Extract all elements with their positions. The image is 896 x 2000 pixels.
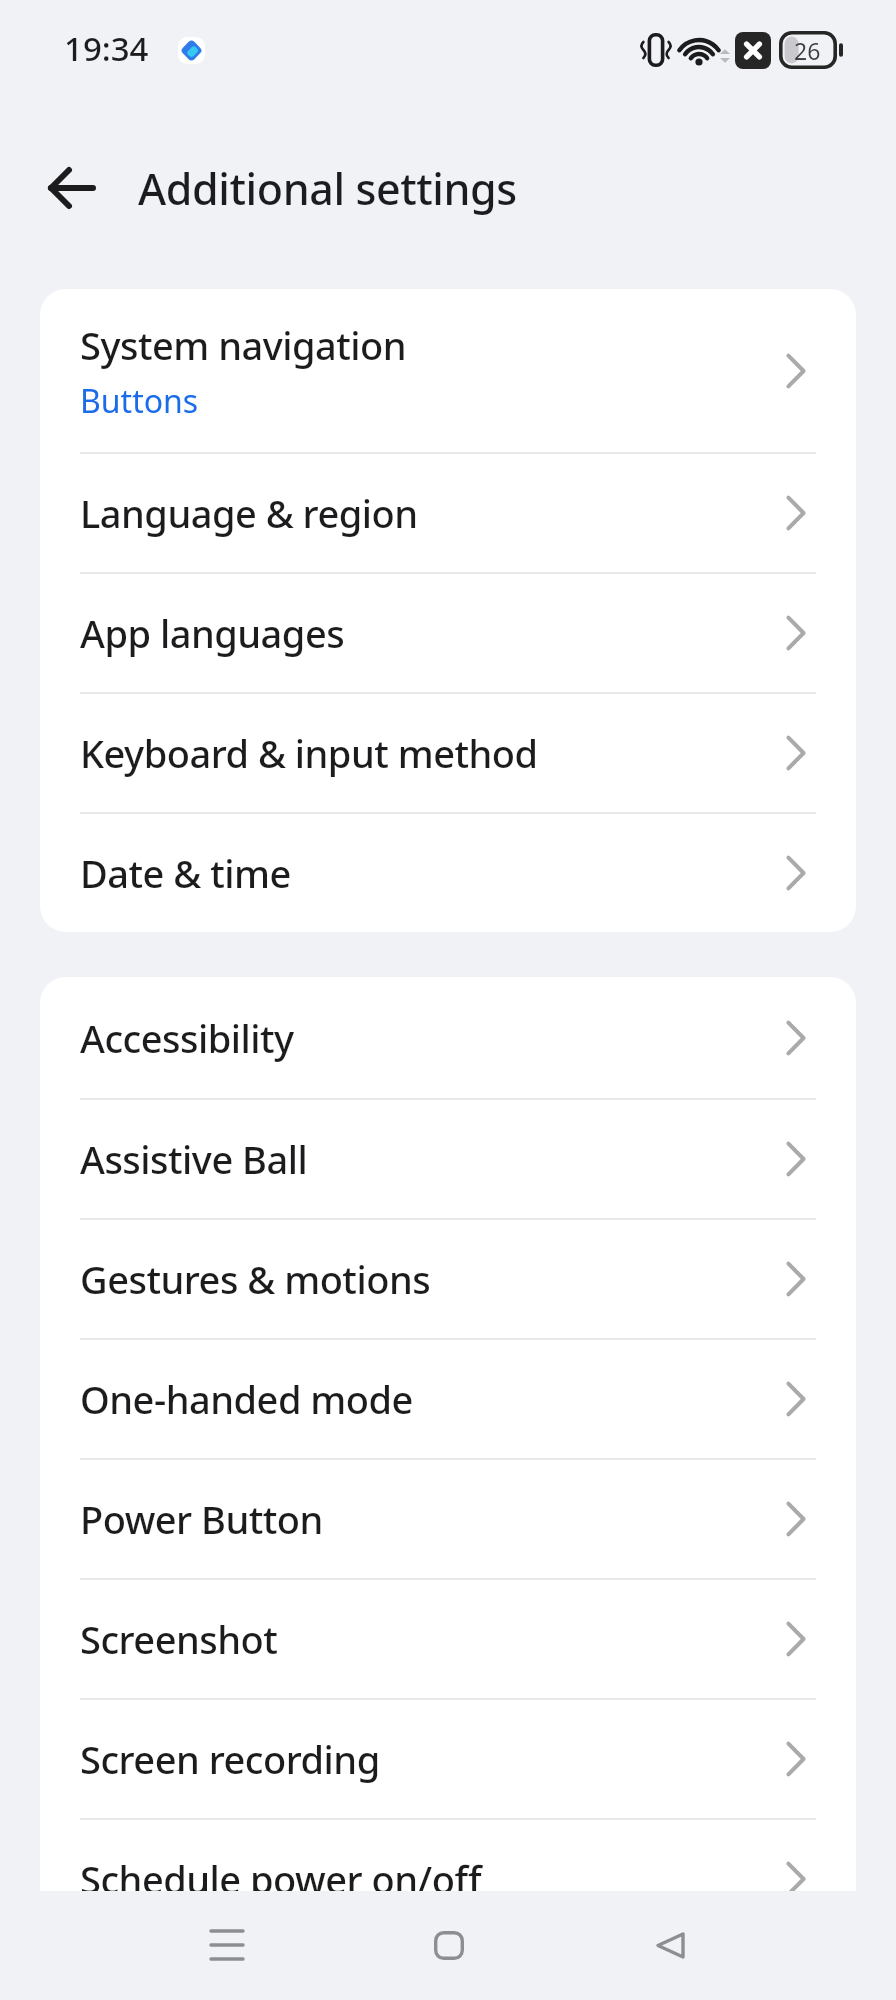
staticText: Screenshot <box>80 1613 278 1665</box>
button[interactable]: Keyboard & input method <box>40 694 856 812</box>
staticText: One-handed mode <box>80 1373 413 1425</box>
staticText: Keyboard & input method <box>80 727 538 779</box>
button[interactable]: One-handed mode <box>40 1340 856 1458</box>
staticText: Screen recording <box>80 1733 380 1785</box>
staticText: Schedule power on/off <box>80 1853 481 1891</box>
button[interactable] <box>195 1913 259 1977</box>
button[interactable]: Date & time <box>40 814 856 932</box>
staticText: Gestures & motions <box>80 1253 431 1305</box>
button[interactable] <box>417 1913 481 1977</box>
staticText: App languages <box>80 607 345 659</box>
staticText: Additional settings <box>138 159 517 218</box>
button[interactable] <box>638 1913 702 1977</box>
staticText: 26 <box>794 35 821 66</box>
staticText: Buttons <box>80 379 199 423</box>
staticText: System navigation <box>80 319 407 371</box>
button[interactable]: Screen recording <box>40 1700 856 1818</box>
button[interactable]: Accessibility <box>40 977 856 1098</box>
button[interactable] <box>42 158 102 218</box>
staticText: Assistive Ball <box>80 1133 308 1185</box>
button[interactable]: Assistive Ball <box>40 1100 856 1218</box>
staticText: 19:34 <box>64 26 149 71</box>
button[interactable]: Language & region <box>40 454 856 572</box>
button[interactable]: Gestures & motions <box>40 1220 856 1338</box>
button[interactable]: Power Button <box>40 1460 856 1578</box>
button[interactable]: Schedule power on/off <box>40 1820 856 1891</box>
staticText: Date & time <box>80 847 291 899</box>
staticText: Accessibility <box>80 1012 294 1064</box>
button[interactable]: Screenshot <box>40 1580 856 1698</box>
button[interactable]: App languages <box>40 574 856 692</box>
staticText: Language & region <box>80 487 418 539</box>
button[interactable]: System navigation <box>40 289 856 452</box>
staticText: Power Button <box>80 1493 323 1545</box>
